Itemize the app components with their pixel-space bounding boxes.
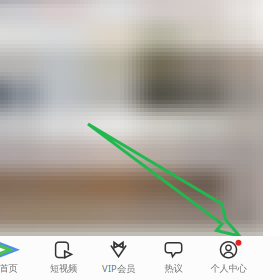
button[interactable]: 个人中心 xyxy=(201,236,256,280)
button[interactable]: VIP会员 xyxy=(91,236,146,280)
button[interactable]: 首页 xyxy=(0,236,36,280)
staticText: 个人中心 xyxy=(210,263,246,274)
staticText: 短视频 xyxy=(50,263,77,274)
button[interactable]: 短视频 xyxy=(36,236,91,280)
button[interactable]: 热议 xyxy=(146,236,201,280)
staticText: 热议 xyxy=(164,263,182,274)
staticText: VIP会员 xyxy=(102,262,135,275)
staticText: 首页 xyxy=(0,263,17,274)
